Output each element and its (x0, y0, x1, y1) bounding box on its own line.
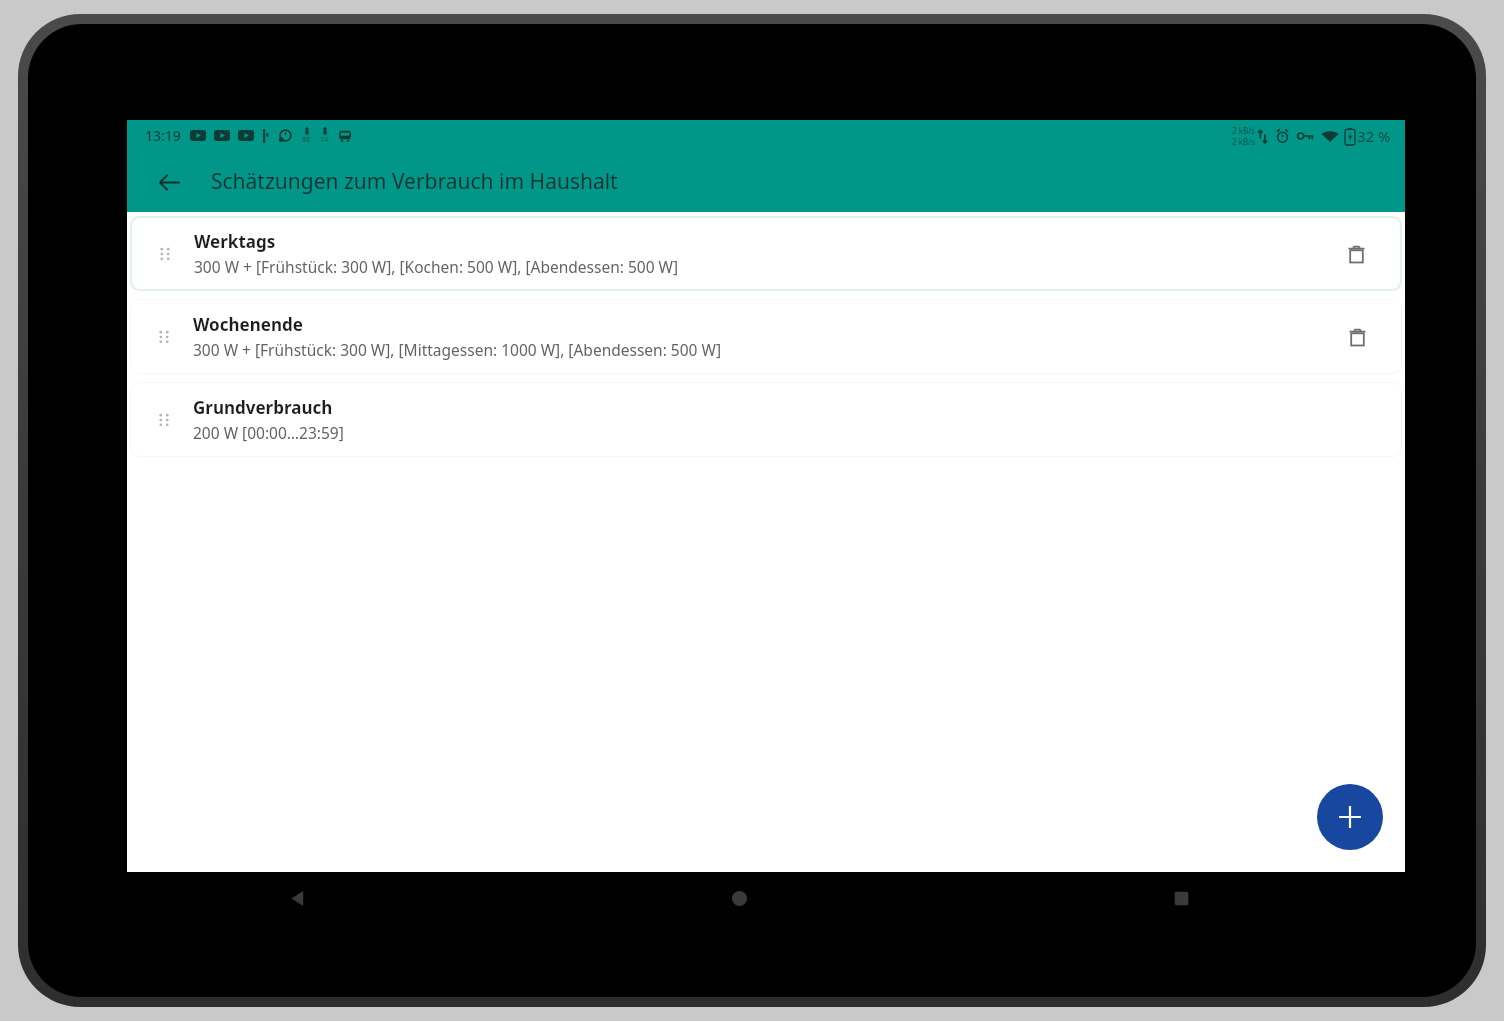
staticText: 13:19 (145, 126, 181, 145)
button[interactable]: Verschieben (148, 237, 182, 271)
button[interactable]: Verschieben (147, 403, 181, 437)
staticText: 88 (302, 135, 311, 145)
button[interactable]: Verschieben (131, 300, 1401, 373)
button[interactable]: Zurück (273, 874, 321, 922)
staticText: Werktags (194, 230, 276, 253)
staticText: Wochenende (193, 313, 303, 336)
button[interactable]: Hinzufügen (1317, 784, 1383, 850)
button[interactable]: Startbildschirm (715, 874, 763, 922)
staticText: 2 kB/s (1232, 136, 1255, 147)
button[interactable]: Verschieben (132, 218, 1400, 289)
staticText: 300 W + [Frühstück: 300 W], [Kochen: 500… (194, 256, 679, 277)
staticText: Schätzungen zum Verbrauch im Haushalt (211, 167, 618, 196)
staticText: 2 kB/s (1232, 125, 1255, 136)
button[interactable]: Verschieben (131, 383, 1401, 456)
button[interactable]: Verschieben (147, 320, 181, 354)
staticText: 32 % (1357, 126, 1391, 146)
button[interactable]: Löschen (1334, 232, 1378, 276)
button[interactable]: Zurück (147, 160, 191, 204)
staticText: 74 (320, 135, 329, 145)
button[interactable]: Löschen (1335, 315, 1379, 359)
staticText: 300 W + [Frühstück: 300 W], [Mittagessen… (193, 339, 721, 360)
staticText: Grundverbrauch (193, 396, 333, 419)
staticText: 200 W [00:00…23:59] (193, 422, 344, 443)
button[interactable]: Übersicht (1157, 874, 1205, 922)
